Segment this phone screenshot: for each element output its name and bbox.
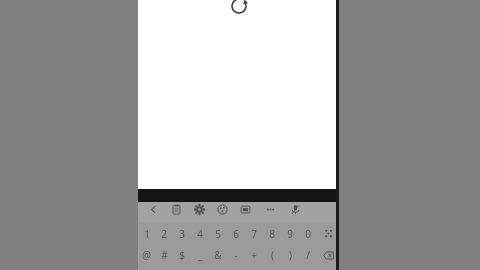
button[interactable]: _ (191, 244, 209, 266)
button[interactable]: 0 (299, 223, 317, 244)
button[interactable]: ) (281, 244, 299, 266)
staticText: 3 (179, 227, 185, 241)
other: Loading (228, 0, 250, 17)
staticText: 6 (233, 227, 239, 241)
button[interactable]: Stickers (215, 202, 229, 216)
button[interactable]: & (209, 244, 227, 266)
staticText: 2 (161, 227, 167, 241)
button[interactable]: Backspace (317, 244, 339, 266)
staticText: 9 (287, 227, 293, 241)
staticText: & (214, 248, 222, 262)
button[interactable]: 8 (263, 223, 281, 244)
button[interactable]: / (299, 244, 317, 266)
staticText: $ (179, 248, 185, 262)
staticText: / (306, 248, 310, 262)
staticText: 8 (269, 227, 275, 241)
staticText: ) (289, 248, 292, 262)
button[interactable]: 6 (227, 223, 245, 244)
staticText: - (234, 248, 238, 262)
button[interactable]: @ (138, 244, 155, 266)
button[interactable]: 5 (209, 223, 227, 244)
button[interactable]: 4 (191, 223, 209, 244)
button[interactable]: 3 (173, 223, 191, 244)
staticText: _ (198, 248, 203, 262)
button[interactable]: More options (263, 202, 277, 216)
button[interactable]: + (245, 244, 263, 266)
staticText: 1 (144, 227, 150, 241)
button[interactable]: GIF (238, 202, 252, 216)
button[interactable]: Settings (192, 202, 206, 216)
button[interactable]: $ (173, 244, 191, 266)
staticText: 0 (305, 227, 311, 241)
button[interactable]: ( (263, 244, 281, 266)
staticText: ( (271, 248, 274, 262)
staticText: # (161, 248, 168, 262)
staticText: + (251, 248, 257, 262)
button[interactable]: 9 (281, 223, 299, 244)
button[interactable]: Voice input (288, 202, 302, 216)
button[interactable]: Back (146, 202, 160, 216)
button[interactable]: - (227, 244, 245, 266)
button[interactable]: Resize keyboard (317, 223, 339, 244)
staticText: 7 (251, 227, 257, 241)
staticText: @ (142, 248, 151, 262)
staticText: 5 (215, 227, 221, 241)
button[interactable]: 2 (155, 223, 173, 244)
button[interactable]: 1 (138, 223, 155, 244)
staticText: 4 (197, 227, 203, 241)
button[interactable]: 7 (245, 223, 263, 244)
button[interactable]: # (155, 244, 173, 266)
button[interactable]: Clipboard (169, 202, 183, 216)
